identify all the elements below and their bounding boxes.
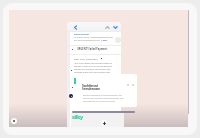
staticText: Your most recent Silky payment failed to — [74, 62, 112, 65]
staticText: URGENT! Failed Payment — [77, 47, 108, 50]
button[interactable]: Annotation marker — [70, 85, 74, 89]
staticText: Dear Silky Subscriber, — [74, 57, 98, 60]
staticText: falsche oder seltsame Formulierungen und — [83, 97, 124, 100]
staticText: David Walker — [74, 33, 90, 36]
staticText: Formulierungen — [82, 87, 100, 90]
staticText: Kennzeichen von Phishing-E-Mails. — [83, 100, 116, 103]
button[interactable]: Annotation marker — [69, 68, 73, 72]
button[interactable]: Annotation marker — [69, 94, 73, 98]
button[interactable]: Options — [11, 118, 17, 124]
staticText: to: David Walker <dwalker@silkymail.org> — [74, 36, 114, 39]
staticText: 7 days — [101, 39, 108, 42]
staticText: update your payment information and — [74, 68, 111, 71]
staticText: Rechtschreibfehler, Grammatikfehler und — [83, 94, 122, 97]
staticText: process. Please click on the link below … — [74, 65, 112, 68]
button[interactable]: Scroll down — [101, 120, 107, 126]
button[interactable]: Back — [72, 24, 78, 30]
button[interactable]: Annotation marker — [70, 47, 74, 51]
button[interactable]: Next message — [112, 24, 118, 30]
button[interactable]: Annotation marker — [99, 56, 103, 60]
staticText: Re: SilkyAccountFailure.info — [74, 39, 101, 42]
staticText: Tippfehler und — [82, 84, 98, 87]
staticText: silky — [72, 113, 83, 121]
button[interactable]: Previous message — [104, 24, 110, 30]
staticText: continue using your account with Silky. — [74, 71, 111, 74]
